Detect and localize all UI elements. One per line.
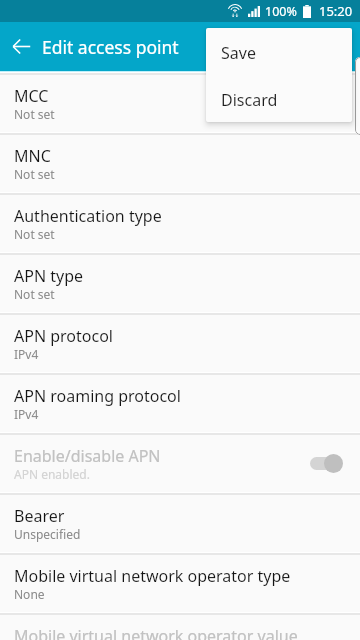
staticText: Unspecified [14, 526, 81, 542]
button[interactable]: MNC [0, 133, 360, 193]
staticText: APN type [14, 265, 84, 287]
button[interactable]: Authentication type [0, 193, 360, 253]
staticText: APN enabled. [14, 466, 90, 482]
staticText: Not set [14, 106, 55, 122]
staticText: Save [221, 42, 256, 64]
staticText: Not set [14, 286, 55, 302]
button[interactable]: Save [206, 28, 352, 75]
staticText: Mobile virtual network operator type [14, 565, 291, 587]
button[interactable]: APN type [0, 253, 360, 313]
button[interactable]: APN roaming protocol [0, 373, 360, 433]
staticText: Discard [221, 89, 278, 111]
button[interactable]: Mobile virtual network operator value [0, 613, 360, 640]
button[interactable]: Enable/disable APN [0, 433, 360, 493]
staticText: Bearer [14, 505, 65, 527]
staticText: Not set [14, 166, 55, 182]
staticText: MCC [14, 85, 49, 107]
button[interactable]: APN protocol [0, 313, 360, 373]
button[interactable]: MCC [0, 73, 360, 133]
staticText: 15:20 [319, 2, 353, 20]
button[interactable]: Discard [206, 75, 352, 122]
staticText: MNC [14, 145, 51, 167]
staticText: 100% [265, 3, 297, 20]
staticText: IPv4 [14, 406, 39, 422]
staticText: Not set [14, 226, 55, 242]
staticText: Edit access point [42, 35, 179, 59]
staticText: Authentication type [14, 205, 162, 227]
staticText: Mobile virtual network operator value [14, 625, 298, 640]
staticText: Enable/disable APN [14, 445, 161, 467]
button[interactable]: Bearer [0, 493, 360, 553]
button[interactable]: Navigate up [0, 22, 42, 71]
button[interactable]: Enable or disable APN [300, 448, 346, 478]
staticText: None [14, 586, 45, 602]
staticText: APN protocol [14, 325, 113, 347]
staticText: APN roaming protocol [14, 385, 181, 407]
button[interactable]: Mobile virtual network operator type [0, 553, 360, 613]
staticText: IPv4 [14, 346, 39, 362]
